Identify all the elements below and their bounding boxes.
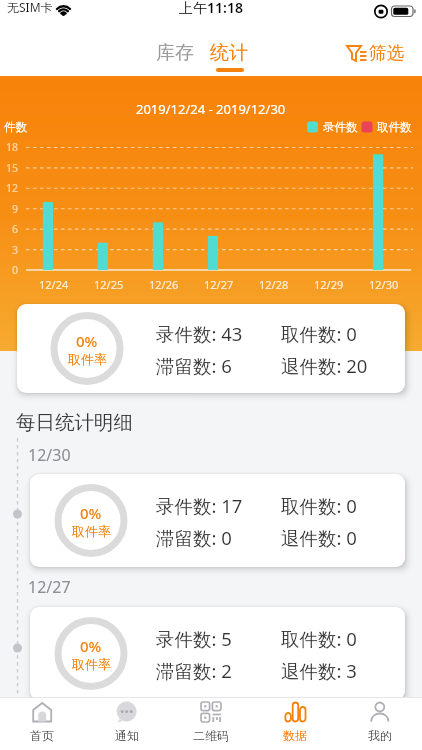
button[interactable]: 0% <box>17 304 405 393</box>
button[interactable] <box>338 697 422 750</box>
staticText: 0% <box>80 503 102 523</box>
staticText: 录件数 <box>323 120 358 134</box>
staticText: 库存 <box>156 41 194 65</box>
staticText: 通知 <box>115 728 139 743</box>
button[interactable]: 筛选 <box>340 34 415 74</box>
staticText: 退件数: 20 <box>281 353 368 378</box>
staticText: 12/30 <box>369 277 399 292</box>
staticText: 筛选 <box>369 42 404 64</box>
staticText: 取件率 <box>72 523 111 539</box>
staticText: 12/28 <box>259 277 289 292</box>
staticText: 上午11:18 <box>179 0 243 17</box>
staticText: 首页 <box>30 728 54 743</box>
staticText: 取件率 <box>68 351 107 367</box>
staticText: 我的 <box>368 728 392 743</box>
staticText: 9 <box>12 202 19 216</box>
button[interactable] <box>253 697 337 750</box>
staticText: 二维码 <box>193 728 229 743</box>
staticText: 每日统计明细 <box>16 410 133 435</box>
staticText: 退件数: 0 <box>281 525 357 550</box>
staticText: 件数 <box>4 120 27 134</box>
staticText: 数据 <box>283 728 307 743</box>
staticText: 录件数: 43 <box>156 321 243 346</box>
button[interactable]: 库存 <box>145 30 204 76</box>
staticText: 0 <box>12 263 19 277</box>
staticText: 取件数 <box>377 120 412 134</box>
button[interactable] <box>169 697 253 750</box>
button[interactable]: 0% <box>30 474 405 567</box>
staticText: 2019/12/24 - 2019/12/30 <box>136 100 286 118</box>
staticText: 12/24 <box>39 277 69 292</box>
staticText: 18 <box>6 140 19 154</box>
staticText: 3 <box>12 243 19 257</box>
staticText: 6 <box>12 222 19 236</box>
staticText: 统计 <box>210 41 248 65</box>
staticText: 退件数: 3 <box>281 658 357 683</box>
staticText: 12/27 <box>204 277 234 292</box>
button[interactable] <box>0 697 84 750</box>
staticText: 12/25 <box>94 277 124 292</box>
staticText: 录件数: 5 <box>156 626 232 651</box>
staticText: 12/26 <box>149 277 179 292</box>
staticText: 12/30 <box>28 444 71 466</box>
staticText: 取件数: 0 <box>281 626 357 651</box>
staticText: 滞留数: 0 <box>156 525 232 550</box>
staticText: 0% <box>80 636 102 656</box>
staticText: 取件数: 0 <box>281 493 357 518</box>
staticText: 滞留数: 6 <box>156 353 232 378</box>
staticText: 12 <box>6 181 19 195</box>
button[interactable]: 统计 <box>199 30 259 76</box>
staticText: 15 <box>6 161 19 175</box>
staticText: 取件数: 0 <box>281 321 357 346</box>
staticText: 12/27 <box>28 576 71 598</box>
staticText: 录件数: 17 <box>156 493 243 518</box>
staticText: 滞留数: 2 <box>156 658 232 683</box>
button[interactable] <box>85 697 169 750</box>
staticText: 取件率 <box>72 656 111 672</box>
staticText: 无SIM卡 <box>7 0 53 15</box>
staticText: 0% <box>76 331 98 351</box>
staticText: 12/29 <box>314 277 344 292</box>
button[interactable]: 0% <box>30 607 405 700</box>
